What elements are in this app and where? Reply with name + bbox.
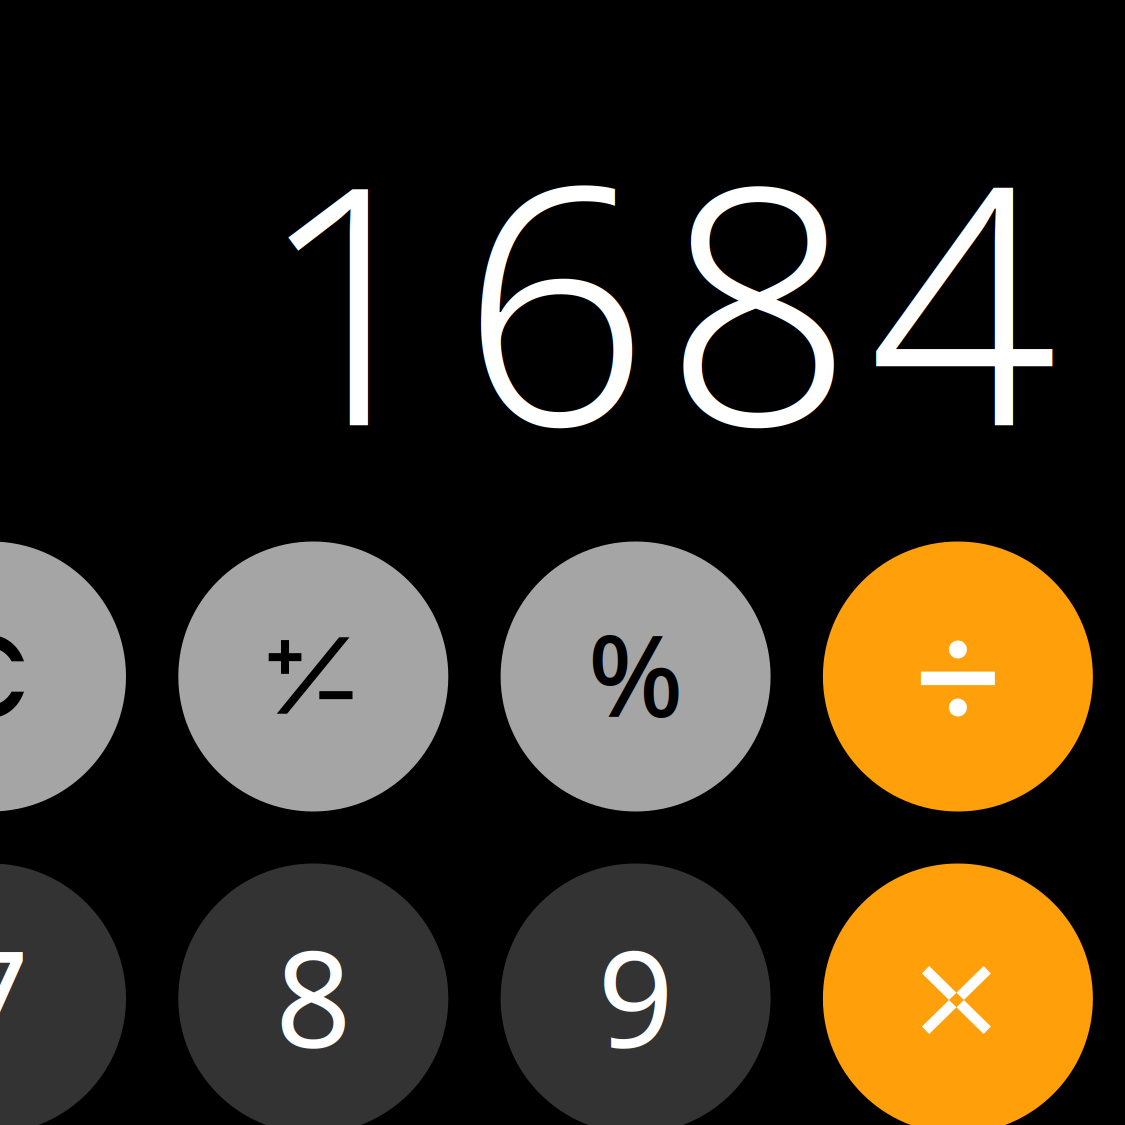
staticText: 1684 [256, 77, 1057, 516]
button[interactable]: Multiply [823, 863, 1093, 1125]
button[interactable]: Clear [0, 541, 126, 811]
button[interactable]: Plus Minus [178, 541, 448, 811]
staticText: % [588, 599, 683, 748]
button[interactable]: 9 [501, 863, 771, 1125]
button[interactable]: 7 [0, 863, 126, 1125]
button[interactable]: Percent [501, 541, 771, 811]
staticText: 7 [0, 907, 29, 1085]
button[interactable]: Divide [823, 541, 1093, 811]
staticText: 9 [598, 907, 674, 1085]
button[interactable]: 8 [178, 863, 448, 1125]
staticText: 8 [275, 907, 351, 1085]
